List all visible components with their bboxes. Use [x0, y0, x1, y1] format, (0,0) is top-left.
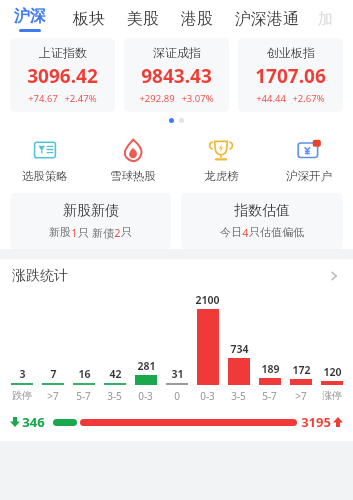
button[interactable]: 沪深港通 [228, 5, 306, 33]
button[interactable]: 沪深 [12, 6, 48, 32]
staticText: 上证指数 [39, 45, 87, 60]
staticText: >7 [47, 389, 59, 403]
staticText: 281 [137, 359, 156, 373]
staticText: +3.07% [181, 92, 214, 105]
staticText: 120 [323, 365, 342, 379]
staticText: 3096.42 [27, 63, 98, 89]
staticText: 3-5 [231, 389, 246, 403]
button[interactable]: 港股 [174, 5, 220, 33]
staticText: 2100 [195, 293, 220, 307]
button[interactable]: 板块 [66, 5, 112, 33]
button[interactable]: 涨跌统计 [0, 259, 353, 293]
staticText: 0 [174, 389, 180, 403]
button[interactable]: 新股新债 [10, 193, 171, 249]
staticText: 只 [121, 225, 132, 239]
staticText: 0-3 [200, 389, 215, 403]
staticText: 新股新债 [63, 202, 119, 220]
staticText: +2.47% [64, 92, 97, 105]
staticText: 跌停 [12, 389, 32, 402]
staticText: 0-3 [138, 389, 153, 403]
staticText: 734 [230, 342, 249, 356]
staticText: 5-7 [262, 389, 277, 403]
button[interactable]: 雪球热股 [89, 132, 177, 187]
staticText: 3 [19, 367, 26, 381]
staticText: 1707.06 [255, 63, 326, 89]
staticText: 只估值偏低 [249, 225, 304, 239]
staticText: +2.67% [292, 92, 325, 105]
other: 雪球热股 [120, 137, 146, 163]
staticText: 9843.43 [141, 63, 212, 89]
other: 沪深开户 [296, 137, 323, 164]
staticText: 4 [242, 225, 249, 240]
staticText: 涨停 [322, 389, 342, 402]
staticText: 今日 [220, 225, 242, 239]
other: 选股策略 [32, 137, 58, 163]
staticText: 深证成指 [153, 45, 201, 60]
staticText: 16 [78, 367, 91, 381]
staticText: 加 [318, 10, 333, 29]
staticText: 龙虎榜 [204, 169, 239, 183]
button[interactable]: 深证成指 [124, 38, 229, 112]
button[interactable]: 指数估值 [181, 193, 343, 249]
staticText: 3-5 [107, 389, 122, 403]
button[interactable]: 上证指数 [10, 38, 115, 112]
staticText: 3195 [301, 413, 331, 431]
staticText: 2 [114, 225, 121, 240]
staticText: 板块 [73, 9, 105, 29]
button[interactable]: 创业板指 [238, 38, 343, 112]
staticText: 雪球热股 [110, 169, 156, 183]
staticText: 美股 [127, 9, 159, 29]
staticText: 涨跌统计 [12, 267, 68, 285]
staticText: 指数估值 [234, 202, 290, 220]
staticText: 31 [171, 367, 184, 381]
button[interactable]: 选股策略 [0, 132, 89, 187]
staticText: 港股 [181, 9, 213, 29]
staticText: +44.44 [256, 92, 286, 105]
staticText: 1 [71, 225, 78, 240]
button[interactable]: 龙虎榜 [177, 132, 265, 187]
other: 龙虎榜 [208, 137, 234, 163]
staticText: 7 [50, 367, 57, 381]
staticText: 沪深 [14, 6, 46, 26]
button[interactable]: 沪深开户 [265, 132, 353, 187]
staticText: 5-7 [76, 389, 91, 403]
staticText: 42 [109, 367, 122, 381]
staticText: 新股 [49, 225, 71, 239]
staticText: 沪深港通 [235, 9, 299, 29]
staticText: +292.89 [139, 92, 175, 105]
staticText: +74.67 [28, 92, 58, 105]
staticText: 创业板指 [267, 45, 315, 60]
staticText: 172 [292, 363, 311, 377]
staticText: 沪深开户 [286, 169, 332, 183]
staticText: 189 [261, 362, 280, 376]
button[interactable]: 美股 [120, 5, 166, 33]
staticText: >7 [295, 389, 307, 403]
staticText: 346 [22, 413, 45, 431]
staticText: 只 新债 [78, 225, 114, 240]
other: 更多 [327, 269, 341, 283]
button[interactable]: 加 [314, 10, 337, 29]
staticText: 选股策略 [22, 169, 68, 183]
